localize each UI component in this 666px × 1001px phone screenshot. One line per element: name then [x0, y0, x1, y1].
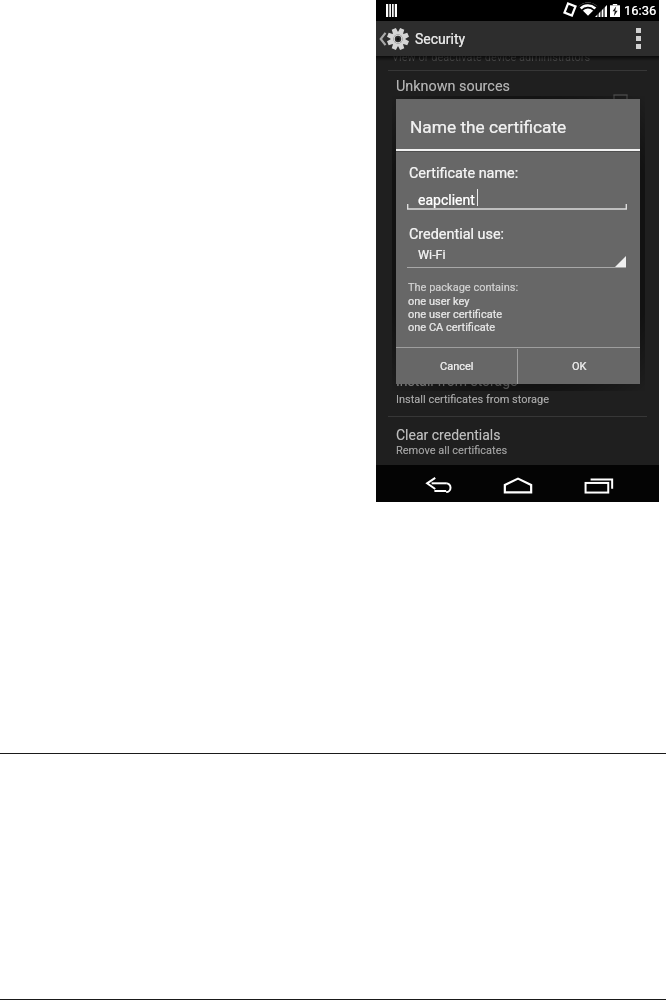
staticText: The package contains:: [408, 281, 519, 294]
staticText: Install certificates from storage: [396, 393, 549, 406]
staticText: OK: [572, 360, 587, 373]
staticText: View or deactivate device administrators: [392, 51, 591, 64]
button[interactable]: Cancel: [396, 349, 517, 384]
staticText: Cancel: [440, 360, 474, 373]
staticText: Name the certificate: [410, 117, 567, 137]
button[interactable]: More options: [617, 21, 659, 56]
staticText: 16:36: [624, 3, 657, 18]
staticText: one user certificate: [408, 308, 503, 321]
staticText: Unknown sources: [396, 78, 510, 95]
staticText: one user key: [408, 295, 470, 308]
staticText: Clear credentials: [396, 427, 501, 443]
button[interactable]: Back: [404, 465, 476, 502]
staticText: Remove all certificates: [396, 444, 508, 457]
button[interactable]: Home: [482, 465, 554, 502]
staticText: eapclient: [418, 192, 475, 208]
staticText: Wi-Fi: [418, 247, 446, 262]
staticText: Install from storage: [396, 373, 518, 389]
staticText: Security: [415, 31, 466, 47]
button[interactable]: Security: [376, 21, 466, 56]
button[interactable]: Recent apps: [563, 465, 635, 502]
staticText: Certificate name:: [409, 165, 519, 182]
button[interactable]: OK: [518, 349, 640, 384]
staticText: Credential use:: [409, 226, 505, 243]
staticText: one CA certificate: [408, 321, 496, 334]
